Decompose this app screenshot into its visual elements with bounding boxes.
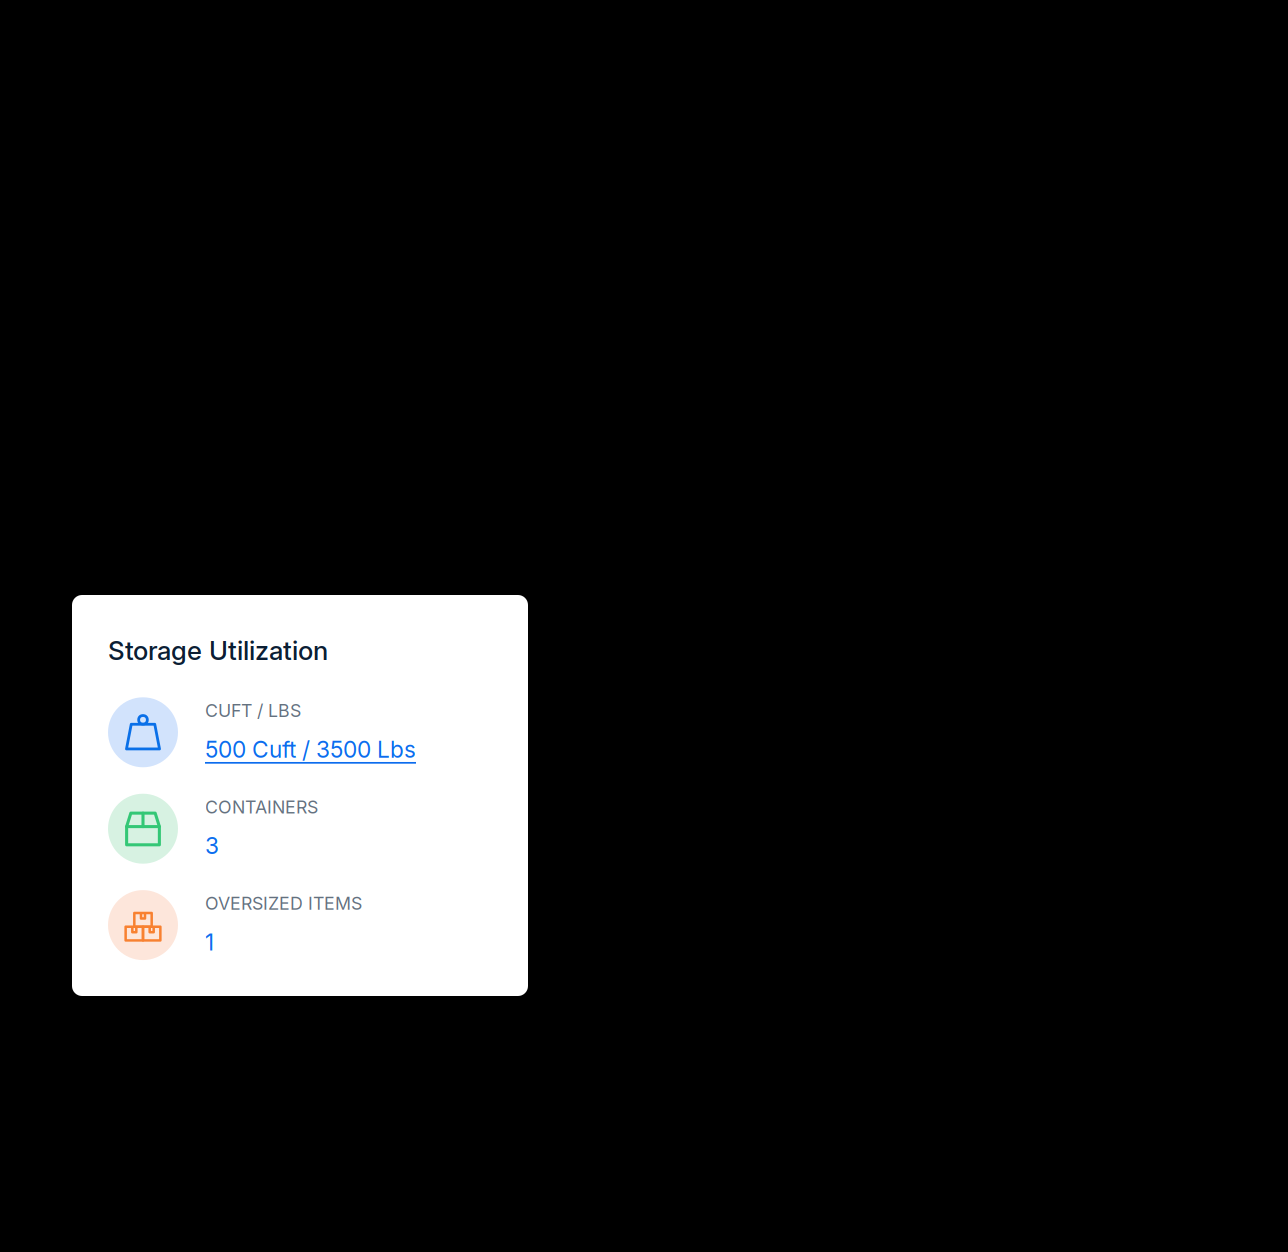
staticText: 500 Cuft / 3500 Lbs	[205, 736, 416, 763]
button[interactable]: CONTAINERS	[108, 794, 512, 864]
staticText: Storage Utilization	[108, 635, 328, 666]
staticText: OVERSIZED ITEMS	[205, 893, 362, 914]
button[interactable]: OVERSIZED ITEMS	[108, 890, 512, 960]
button[interactable]: CUFT / LBS	[108, 697, 512, 767]
staticText: CUFT / LBS	[205, 700, 301, 721]
staticText: CONTAINERS	[205, 796, 318, 818]
staticText: 3	[205, 832, 219, 860]
staticText: 1	[205, 929, 214, 956]
